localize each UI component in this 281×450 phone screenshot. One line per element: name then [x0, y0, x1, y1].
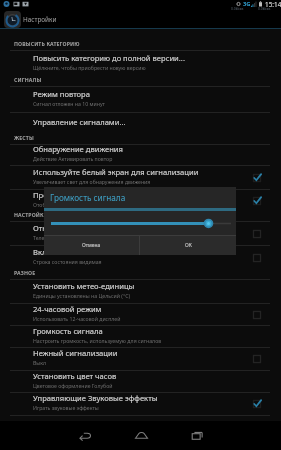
staticText: Действие Активировать повтор: [33, 155, 113, 162]
staticText: 0.0kbps: [258, 6, 271, 11]
staticText: Продолжительность сигнала: [33, 190, 140, 200]
staticText: Используйте белый экран для сигнализации: [33, 167, 199, 177]
button[interactable]: Управление сигналами...: [0, 113, 281, 134]
button[interactable]: Громкость сигнала: [0, 326, 281, 347]
button[interactable]: Включить часы: [0, 246, 281, 269]
staticText: Использовать 12-часовой дисплей: [33, 315, 121, 322]
staticText: 24-часовой режим: [33, 304, 102, 314]
staticText: РАЗНОЕ: [14, 269, 36, 276]
staticText: 0.0kbps: [231, 6, 244, 11]
staticText: Установить цвет часов: [33, 371, 117, 381]
staticText: Включить часы: [33, 247, 90, 257]
staticText: Обнаружение движения: [33, 144, 123, 154]
button[interactable]: Нежный сигнализации: [0, 348, 281, 370]
staticText: Режим повтора: [33, 89, 90, 99]
staticText: Управление сигналами...: [33, 117, 126, 127]
button[interactable]: Управляющие Звуковые эффекты: [0, 393, 281, 415]
button[interactable]: Продолжительность сигнала: [0, 190, 281, 211]
staticText: ПОВЫСИТЬ КАТЕГОРИЮ: [14, 40, 80, 47]
staticText: Отмена: [82, 242, 101, 249]
staticText: Строка состояния видимая: [33, 258, 102, 265]
staticText: Играть звуковые эффекты: [33, 404, 99, 411]
button[interactable]: 24-часовой режим: [0, 304, 281, 325]
button[interactable]: Режим повтора: [0, 87, 281, 112]
staticText: СИГНАЛЫ: [14, 76, 42, 83]
staticText: Цветовое оформление Голубой: [33, 382, 113, 389]
staticText: Повысить категорию до полной версии...: [33, 53, 185, 63]
staticText: 3G: [243, 0, 251, 8]
staticText: Настройки: [23, 15, 57, 24]
button[interactable]: Back: [57, 421, 113, 450]
button[interactable]: Используйте белый экран для сигнализации: [0, 166, 281, 189]
staticText: Нежный сигнализации: [33, 348, 118, 358]
staticText: Управляющие Звуковые эффекты: [33, 393, 158, 403]
staticText: ЖЕСТЫ: [14, 134, 34, 141]
staticText: Настроить громкость, используемую для си…: [33, 337, 162, 344]
button[interactable]: Recents: [169, 421, 225, 450]
staticText: Громкость сигнала: [50, 192, 126, 203]
button[interactable]: ОК: [140, 236, 236, 255]
button[interactable]: Home: [113, 421, 169, 450]
staticText: Громкость сигнала: [33, 326, 103, 336]
button[interactable]: Отключить звук: [0, 222, 281, 245]
staticText: Установить метео-единицы: [33, 281, 135, 291]
staticText: Увеличивает свет для обнаружения движени…: [33, 178, 151, 185]
staticText: Сигнал отложен на 10 минут: [33, 100, 105, 107]
staticText: НАСТРОЙКИ: [14, 211, 48, 218]
staticText: Единицы установлены на Цельсий (°C): [33, 292, 130, 299]
button[interactable]: Установить цвет часов: [0, 371, 281, 392]
staticText: ОК: [185, 242, 192, 249]
button[interactable]: Установить метео-единицы: [0, 280, 281, 303]
staticText: Отображается при срабатывании: [33, 201, 118, 208]
staticText: Щёлкните, чтобы приобрести новую версию: [33, 64, 146, 71]
staticText: Телефон беззвучный режим: [33, 234, 105, 241]
staticText: Выкл: [33, 359, 47, 366]
button[interactable]: Обнаружение движения: [0, 145, 281, 165]
staticText: 15:14: [265, 0, 281, 9]
staticText: Отключить звук: [33, 223, 92, 233]
button[interactable]: Отмена: [44, 236, 139, 255]
button[interactable]: Повысить категорию до полной версии...: [0, 51, 281, 76]
